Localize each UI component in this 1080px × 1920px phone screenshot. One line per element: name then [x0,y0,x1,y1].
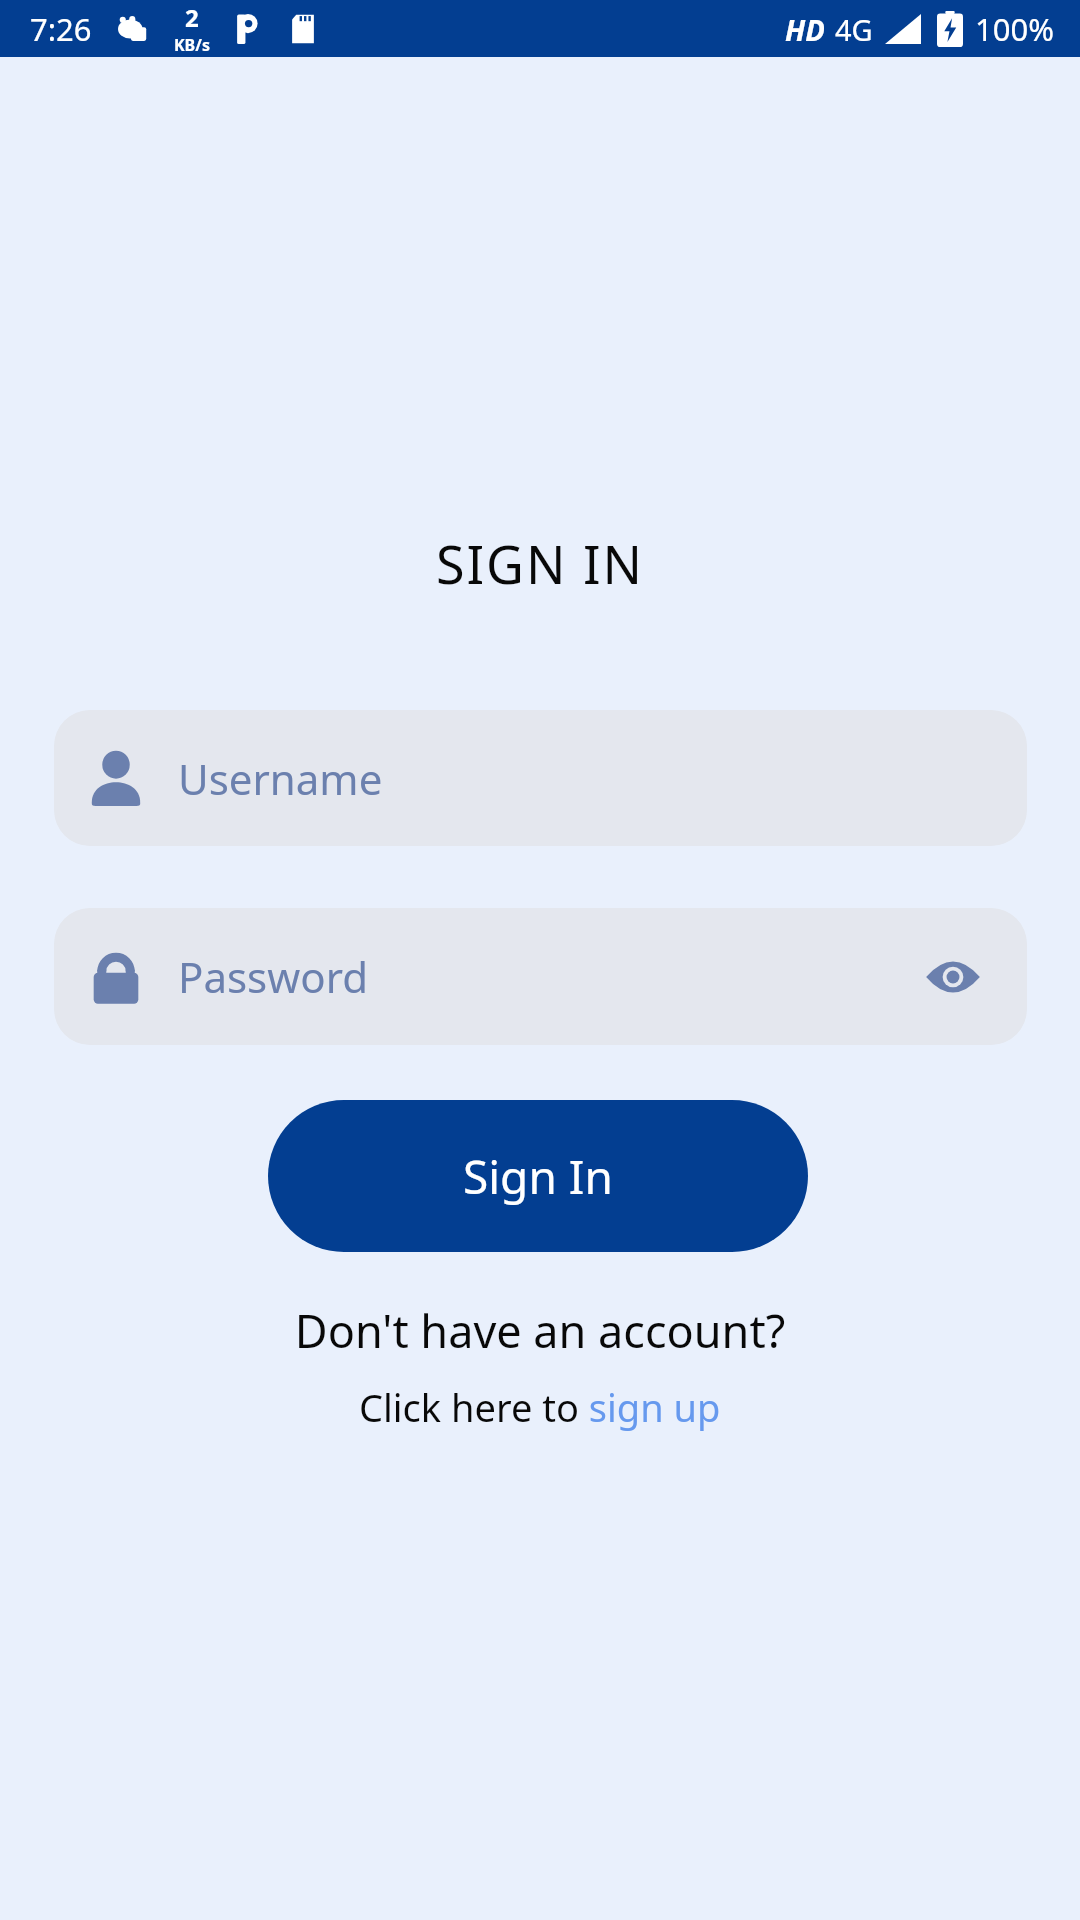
staticText: Sign In [463,1145,613,1208]
staticText: 4G [835,10,873,49]
button[interactable]: Sign In [268,1100,808,1252]
button[interactable]: Show password [909,933,997,1021]
staticText: 7:26 [30,8,92,50]
staticText: 100% [975,8,1054,50]
button[interactable]: Click here to sign up [351,1377,729,1437]
staticText: SIGN IN [0,528,1080,599]
staticText: KB/s [174,34,210,56]
staticText: 2 [185,1,199,34]
staticText: Username [178,750,383,807]
staticText: HD [785,10,825,49]
button[interactable]: Username [54,710,1027,846]
staticText: Password [178,948,368,1005]
staticText: Don't have an account? [0,1300,1080,1361]
staticText: Click here to sign up [359,1381,721,1433]
button[interactable]: Password [54,908,1027,1045]
